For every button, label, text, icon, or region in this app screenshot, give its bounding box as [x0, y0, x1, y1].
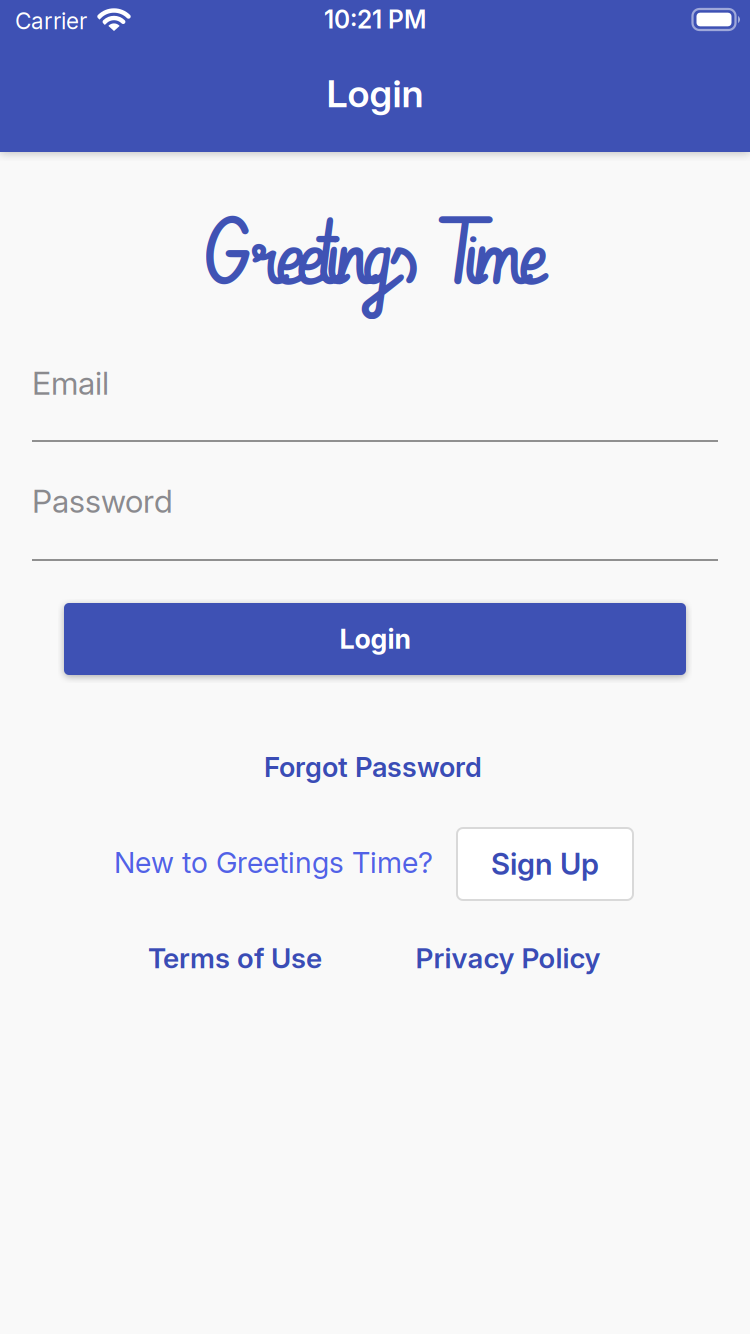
staticText: Forgot Password: [264, 750, 482, 784]
button[interactable]: Forgot Password: [264, 750, 482, 784]
staticText: 10:21 PM: [324, 5, 426, 34]
button[interactable]: Privacy Policy: [415, 941, 600, 975]
staticText: Privacy Policy: [415, 941, 600, 975]
staticText: Terms of Use: [148, 941, 322, 975]
button[interactable]: Terms of Use: [148, 941, 322, 975]
button[interactable]: Sign Up: [457, 828, 633, 900]
staticText: Sign Up: [491, 846, 599, 882]
staticText: Password: [32, 482, 173, 520]
staticText: Login: [326, 70, 423, 116]
staticText: Carrier: [15, 7, 87, 35]
staticText: Greetings Time: [203, 198, 546, 319]
button[interactable]: Login: [64, 603, 686, 675]
staticText: Login: [339, 623, 410, 655]
staticText: Email: [32, 364, 109, 402]
staticText: New to Greetings Time?: [114, 845, 433, 880]
